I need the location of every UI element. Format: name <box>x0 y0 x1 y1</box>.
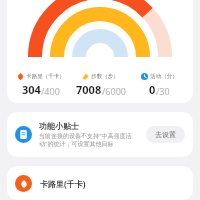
button[interactable]: 去设置 <box>146 126 185 143</box>
staticText: 卡路里（千卡） <box>26 73 65 80</box>
staticText: /6000 <box>102 85 126 97</box>
staticText: 卡路里(千卡) <box>40 178 86 189</box>
staticText: 步数（步） <box>91 73 119 80</box>
staticText: 0 <box>149 82 156 97</box>
button[interactable]: 功能小贴士 <box>7 112 193 157</box>
staticText: 7008 <box>76 82 102 97</box>
staticText: 304 <box>22 82 41 97</box>
staticText: 活动（分） <box>150 73 178 80</box>
staticText: /30 <box>156 85 170 97</box>
button[interactable]: 活动（分） <box>130 73 189 97</box>
button[interactable]: 卡路里（千卡） <box>7 0 193 103</box>
staticText: 去设置 <box>155 130 176 139</box>
button[interactable]: 卡路里(千卡) <box>7 166 193 200</box>
staticText: /400 <box>41 85 60 97</box>
staticText: 当前连接的设备不支持"中高强度活动"的统计，可设置其他目标 <box>39 132 141 148</box>
staticText: 功能小贴士 <box>39 121 79 131</box>
button[interactable]: 卡路里（千卡） <box>11 73 71 97</box>
button[interactable]: 步数（步） <box>71 73 130 97</box>
